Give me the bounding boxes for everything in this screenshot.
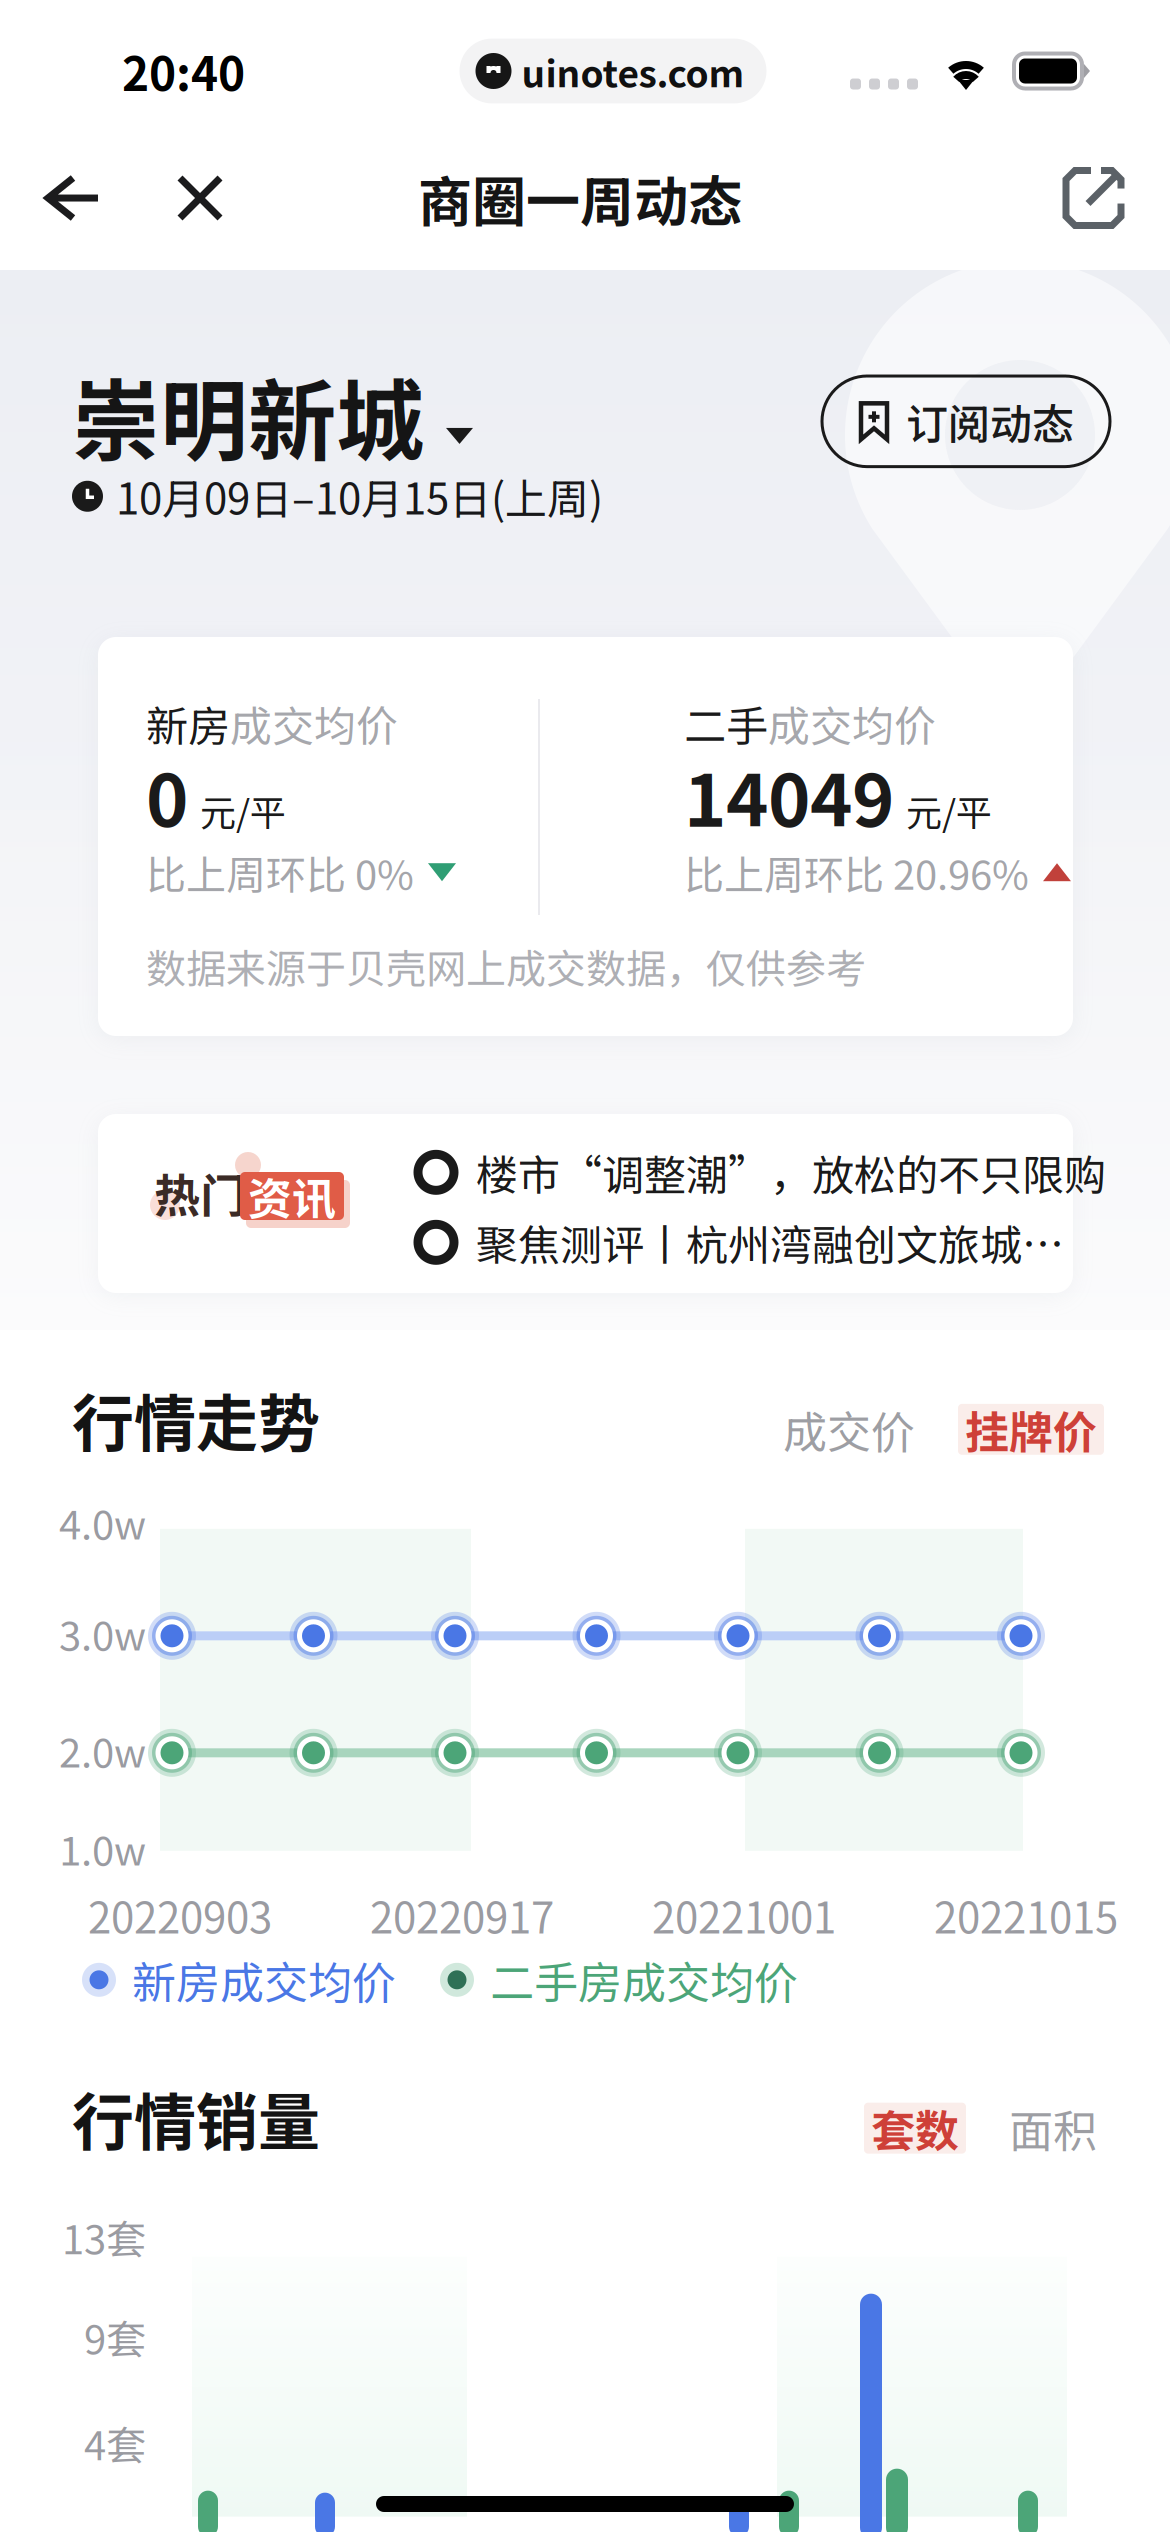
staticText: 比上周环比 0% [146,849,414,895]
button[interactable]: 挂牌价 [958,1404,1104,1455]
staticText: 成交价 [783,1404,915,1455]
staticText: 商圈一周动态 [418,167,742,229]
staticText: 1.0w [59,1825,146,1871]
button[interactable]: 面积 [1002,2103,1104,2154]
button[interactable]: Back [0,142,156,254]
staticText: 行情销量 [72,2082,320,2154]
staticText: 二手房成交均价 [490,1954,798,2005]
staticText: 2.0w [59,1727,146,1773]
staticText: 元/平 [906,789,992,831]
staticText: 4.0w [59,1499,146,1545]
staticText: 20220917 [370,1891,554,1939]
staticText: 聚焦测评丨杭州湾融创文旅城… [476,1218,1064,1267]
staticText: 20220903 [88,1891,272,1939]
button[interactable]: Share [956,142,1170,254]
staticText: 成交均价 [768,699,936,748]
button[interactable]: 订阅动态 [822,376,1110,467]
staticText: 10月09日–10月15日(上周) [116,472,603,521]
staticText: 20221001 [652,1891,836,1939]
button[interactable]: 聚焦测评丨杭州湾融创文旅城… [418,1218,1064,1267]
staticText: 面积 [1009,2103,1097,2154]
staticText: 新房成交均价 [132,1954,396,2005]
staticText: 行情走势 [72,1383,320,1455]
staticText: 订阅动态 [906,397,1074,446]
staticText: 3.0w [59,1610,146,1656]
staticText: 13套 [62,2214,146,2260]
staticText: 4套 [84,2420,146,2466]
staticText: 热门 [154,1166,246,1219]
staticText: 挂牌价 [965,1404,1097,1455]
button[interactable]: 成交价 [776,1404,922,1455]
button[interactable]: 套数 [864,2103,966,2154]
staticText: 14049 [684,754,894,837]
staticText: 元/平 [200,789,286,831]
staticText: 比上周环比 20.96% [684,849,1029,895]
staticText: 楼市“调整潮”，放松的不只限购 [476,1148,1106,1197]
staticText: 0 [146,754,188,837]
staticText: 9套 [84,2314,146,2360]
staticText: uinotes.com [521,50,744,92]
button[interactable]: Close [156,142,282,254]
staticText: 成交均价 [230,699,398,748]
staticText: 新房 [146,699,230,748]
staticText: 崇明新城 [72,364,424,466]
staticText: 二手 [684,699,768,748]
staticText: 数据来源于贝壳网上成交数据，仅供参考 [146,943,866,989]
staticText: 20221015 [934,1891,1118,1939]
staticText: 套数 [871,2103,959,2154]
button[interactable]: 楼市“调整潮”，放松的不只限购 [418,1148,1106,1197]
staticText: 资讯 [248,1170,336,1221]
staticText: 20:40 [122,44,245,98]
